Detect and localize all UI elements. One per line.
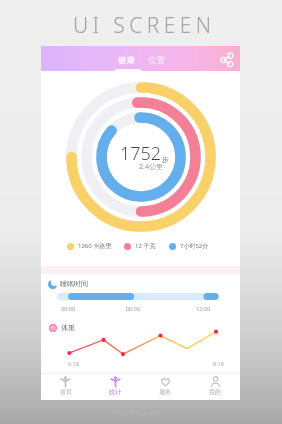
button[interactable]: 我的 <box>190 374 240 401</box>
button[interactable]: 统计 <box>90 374 140 401</box>
staticText: 06:00 <box>123 305 143 312</box>
staticText: 位置 <box>148 55 165 66</box>
staticText: 12:00 <box>193 305 213 312</box>
staticText: 12 千克 <box>135 242 156 250</box>
staticText: 6.18 <box>68 360 79 367</box>
button[interactable]: Share <box>218 51 236 67</box>
staticText: UI SCREEN <box>73 11 216 40</box>
staticText: 2.4公里 <box>139 162 163 172</box>
staticText: 00:00 <box>58 305 78 312</box>
button[interactable]: 服务 <box>140 374 190 401</box>
staticText: 1260 卡路里 <box>78 242 112 250</box>
button[interactable]: 健康 <box>112 46 140 71</box>
staticText: 步 <box>162 155 169 164</box>
staticText: 睡眠时间 <box>60 279 88 288</box>
button[interactable]: 首页 <box>41 374 90 401</box>
button[interactable]: 位置 <box>142 46 170 71</box>
staticText: 我的 <box>209 388 221 396</box>
staticText: 健康 <box>118 55 135 66</box>
staticText: 首页 <box>60 388 72 396</box>
staticText: 体重 <box>61 323 75 332</box>
staticText: 服务 <box>159 388 171 396</box>
staticText: 统计 <box>109 388 121 396</box>
staticText: 1752 <box>120 141 162 166</box>
staticText: 7小时52分 <box>180 242 209 250</box>
staticText: 8.18 <box>213 360 224 367</box>
